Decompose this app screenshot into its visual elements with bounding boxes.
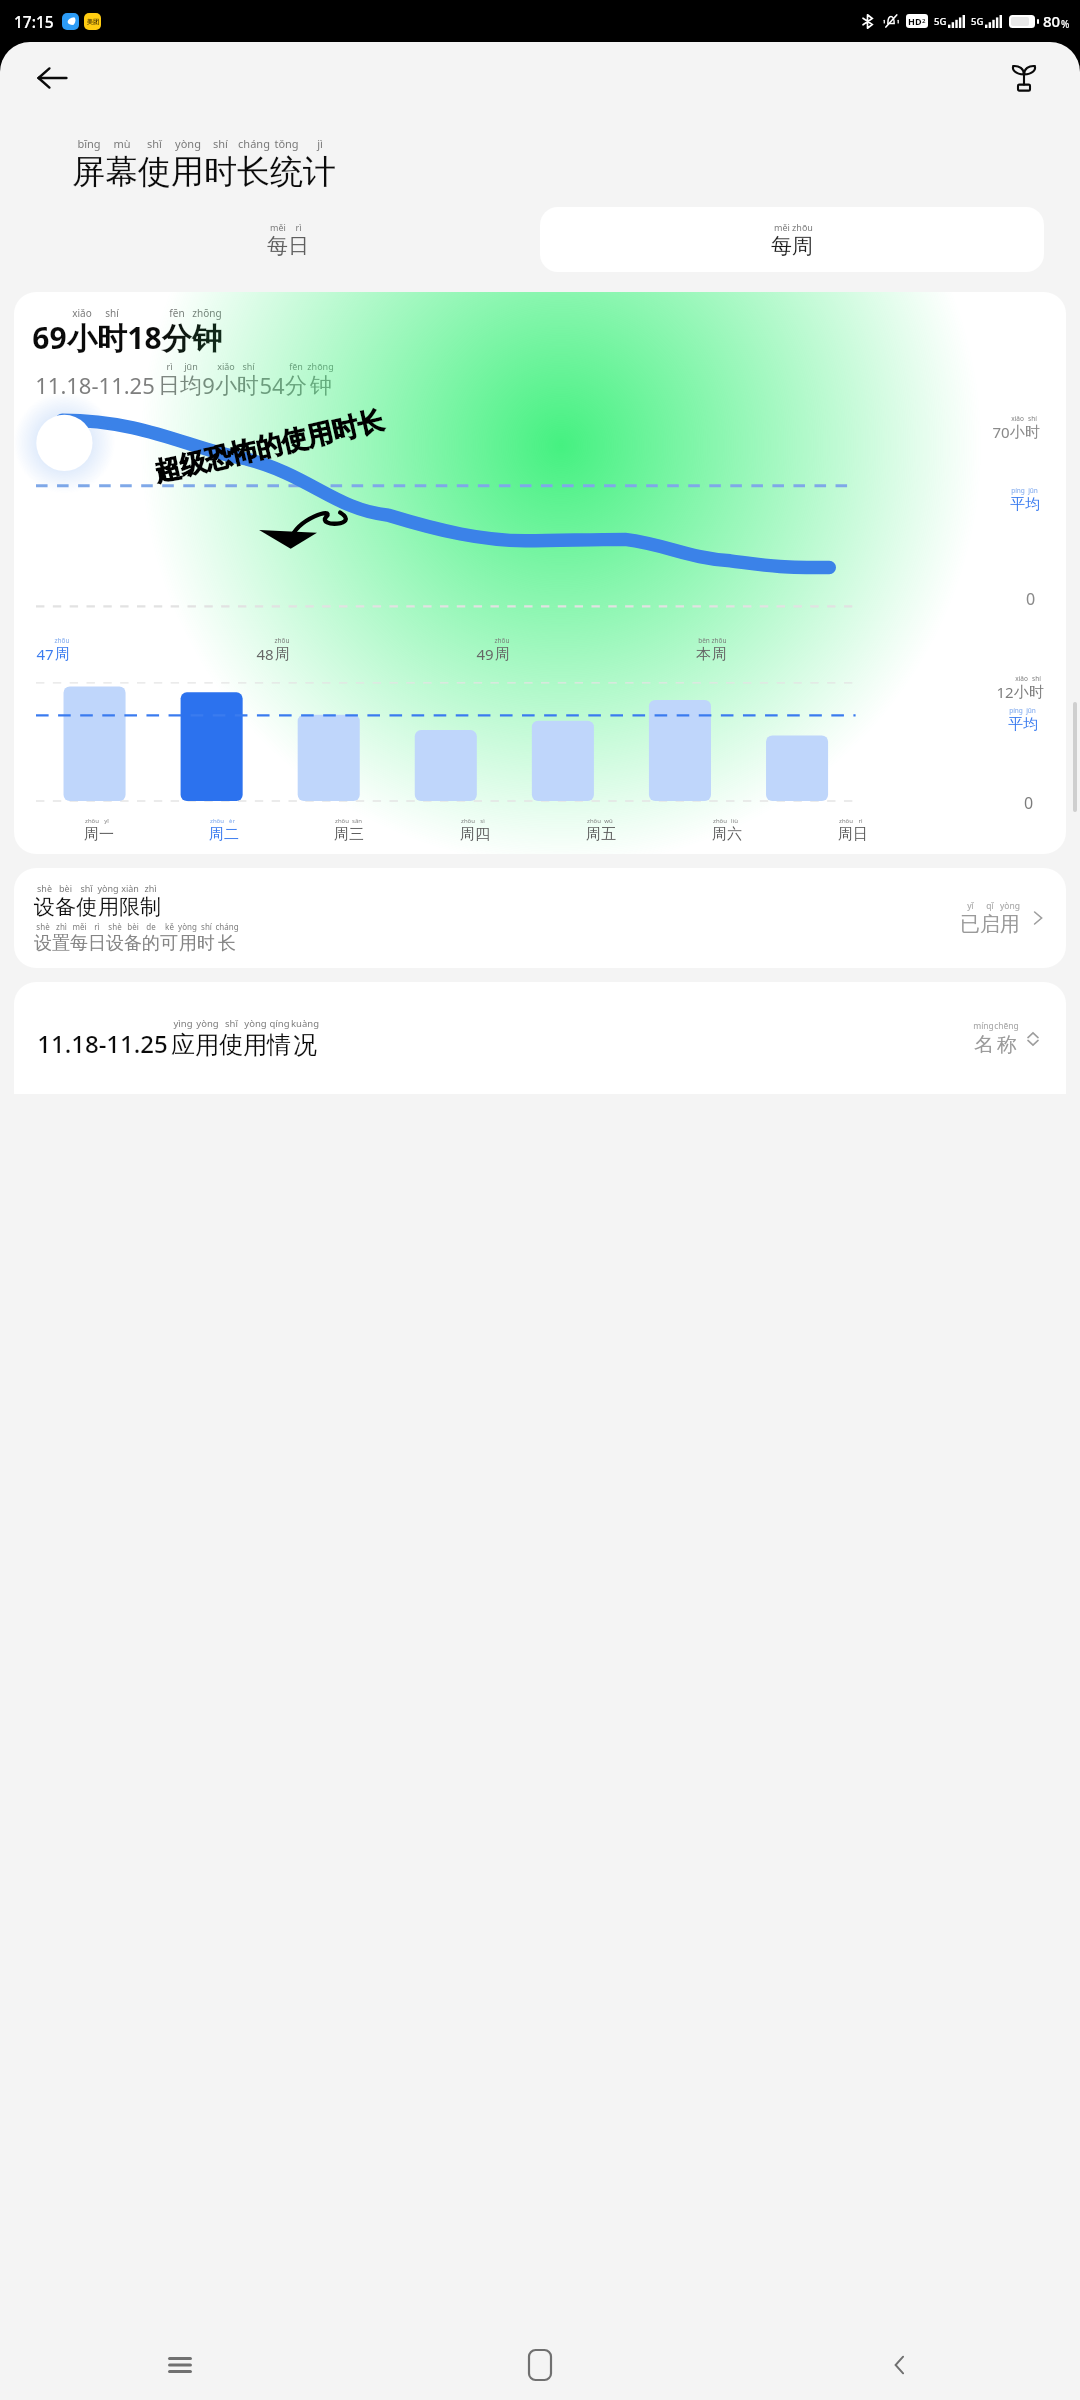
staticText: 美团 xyxy=(87,18,99,26)
staticText: 49 xyxy=(476,644,494,664)
staticText: shí xyxy=(201,921,212,932)
staticText: zhōu xyxy=(54,636,70,645)
staticText: 的 xyxy=(142,932,160,955)
button[interactable]: Home xyxy=(360,2330,720,2400)
staticText: 47 xyxy=(36,644,54,664)
staticText: yòng xyxy=(244,1017,267,1030)
staticText: xiǎo xyxy=(1015,674,1028,683)
staticText: bèi xyxy=(59,882,72,894)
staticText: 周 xyxy=(84,825,99,844)
staticText: zhōu xyxy=(85,817,99,825)
staticText: 2 xyxy=(922,17,926,25)
staticText: 置 xyxy=(52,932,70,955)
staticText: 备 xyxy=(124,932,142,955)
staticText: běn xyxy=(698,636,710,645)
staticText: 时 xyxy=(197,932,215,955)
staticText: xiǎo xyxy=(1011,414,1024,423)
staticText: yī xyxy=(104,817,109,825)
staticText: 用 xyxy=(98,894,119,920)
staticText: yòng xyxy=(175,136,201,151)
staticText: chēng xyxy=(994,1020,1019,1032)
staticText: shí xyxy=(242,360,255,372)
staticText: 0 xyxy=(1026,588,1036,610)
staticText: 使 xyxy=(76,894,97,920)
staticText: sān xyxy=(352,817,362,825)
staticText: jūn xyxy=(1026,706,1036,715)
staticText: měi xyxy=(72,921,87,932)
staticText: 二 xyxy=(224,825,239,844)
staticText: 平 xyxy=(1010,495,1025,514)
staticText: 设 xyxy=(106,932,124,955)
staticText: 小 xyxy=(1010,423,1025,442)
staticText: yǐ xyxy=(967,900,974,912)
staticText: zhōu xyxy=(494,636,510,645)
staticText: 时 xyxy=(1025,423,1040,442)
staticText: 限 xyxy=(119,894,140,920)
staticText: 周 xyxy=(712,645,727,664)
staticText: HD xyxy=(908,15,922,27)
staticText: cháng xyxy=(215,921,239,932)
button[interactable]: Recents xyxy=(0,2330,360,2400)
staticText: 时 xyxy=(97,320,127,358)
staticText: 周 xyxy=(586,825,601,844)
staticText: 11.18-11.25 xyxy=(34,1027,171,1060)
staticText: shè xyxy=(36,921,50,932)
staticText: yòng xyxy=(97,882,119,894)
staticText: jūn xyxy=(184,360,198,372)
staticText: 日 xyxy=(88,932,106,955)
staticText: 时 xyxy=(237,372,259,400)
staticText: zhōu xyxy=(792,221,813,233)
staticText: 0 xyxy=(1024,792,1034,814)
button[interactable]: Back xyxy=(720,2330,1080,2400)
staticText: 日 xyxy=(853,825,868,844)
staticText: 钟 xyxy=(192,320,222,358)
button[interactable]: shè xyxy=(14,868,1066,968)
staticText: zhì xyxy=(56,921,67,932)
staticText: 五 xyxy=(601,825,616,844)
staticText: 周 xyxy=(838,825,853,844)
staticText: 时 xyxy=(1029,683,1044,702)
staticText: 48 xyxy=(256,644,274,664)
staticText: yòng xyxy=(196,1017,219,1030)
staticText: qíng xyxy=(269,1017,290,1030)
button[interactable]: měi xyxy=(36,207,540,272)
staticText: jūn xyxy=(1028,486,1038,495)
staticText: de xyxy=(146,921,156,932)
staticText: shí xyxy=(1032,674,1041,683)
staticText: rì xyxy=(166,360,173,372)
staticText: míng xyxy=(973,1020,994,1032)
staticText: sì xyxy=(480,817,485,825)
staticText: 每 xyxy=(70,932,88,955)
staticText: rì xyxy=(295,221,302,233)
staticText: 均 xyxy=(180,372,202,400)
staticText: jì xyxy=(317,136,323,151)
staticText: % xyxy=(1061,17,1070,31)
staticText: 80 xyxy=(1043,11,1061,31)
button[interactable]: Focus mode xyxy=(998,52,1050,104)
staticText: zhōu xyxy=(839,817,853,825)
staticText: rì xyxy=(94,921,100,932)
staticText: liù xyxy=(731,817,738,825)
staticText: 每 xyxy=(267,233,288,259)
staticText: zhōu xyxy=(274,636,290,645)
staticText: èr xyxy=(229,817,235,825)
staticText: wǔ xyxy=(604,817,613,825)
staticText: xiǎo xyxy=(72,306,92,320)
staticText: shǐ xyxy=(80,882,93,894)
staticText: 12 xyxy=(996,682,1014,702)
staticText: 每 xyxy=(771,233,792,259)
staticText: 一 xyxy=(99,825,114,844)
staticText: 分 xyxy=(285,372,307,400)
staticText: bīng xyxy=(77,136,101,151)
staticText: 周 xyxy=(334,825,349,844)
button[interactable]: měi xyxy=(540,207,1044,272)
staticText: 5G xyxy=(971,15,984,28)
button[interactable]: míng xyxy=(969,1016,1046,1061)
staticText: zhōu xyxy=(587,817,601,825)
staticText: bèi xyxy=(127,921,139,932)
staticText: 平 xyxy=(1008,715,1023,734)
staticText: 使 xyxy=(219,1030,243,1060)
button[interactable]: Back xyxy=(26,52,78,104)
staticText: 已 xyxy=(960,912,980,937)
staticText: 用 xyxy=(179,932,197,955)
